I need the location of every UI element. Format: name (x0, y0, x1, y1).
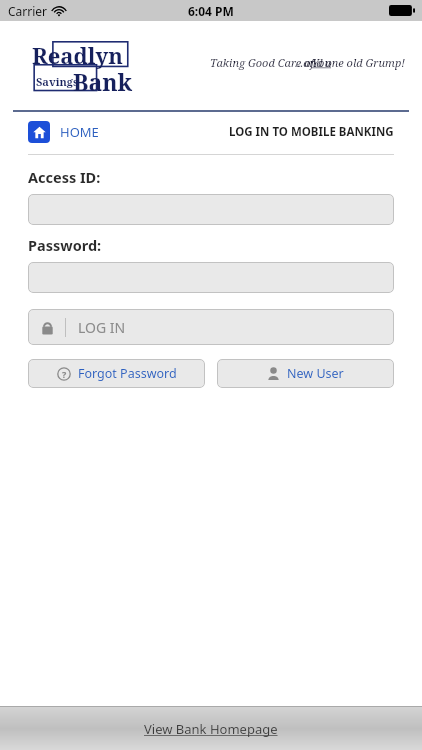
button[interactable] (28, 262, 394, 293)
button[interactable]: ? (28, 359, 205, 388)
staticText: Taking Good Care of (210, 55, 317, 70)
staticText: Forgot Password (78, 365, 177, 382)
button[interactable]: HOME (26, 119, 101, 145)
staticText: View Bank Homepage (144, 720, 278, 738)
staticText: 6:04 PM (188, 3, 234, 19)
staticText: You (312, 55, 332, 70)
staticText: ...and one old Grump! (295, 55, 405, 70)
staticText: Readlyn (32, 40, 123, 70)
staticText: ? (62, 368, 67, 380)
staticText: LOG IN (78, 318, 126, 337)
staticText: HOME (60, 123, 99, 141)
staticText: Access ID: (28, 167, 101, 187)
staticText: LOG IN TO MOBILE BANKING (229, 124, 394, 140)
staticText: Password: (28, 235, 102, 255)
button[interactable] (28, 194, 394, 225)
staticText: Savings (36, 74, 79, 89)
button[interactable]: New User (217, 359, 394, 388)
button[interactable]: LOG IN (28, 309, 394, 345)
staticText: Bank (73, 66, 133, 97)
button[interactable]: View Bank Homepage (0, 707, 422, 750)
staticText: Carrier (8, 3, 48, 19)
staticText: New User (287, 365, 344, 382)
